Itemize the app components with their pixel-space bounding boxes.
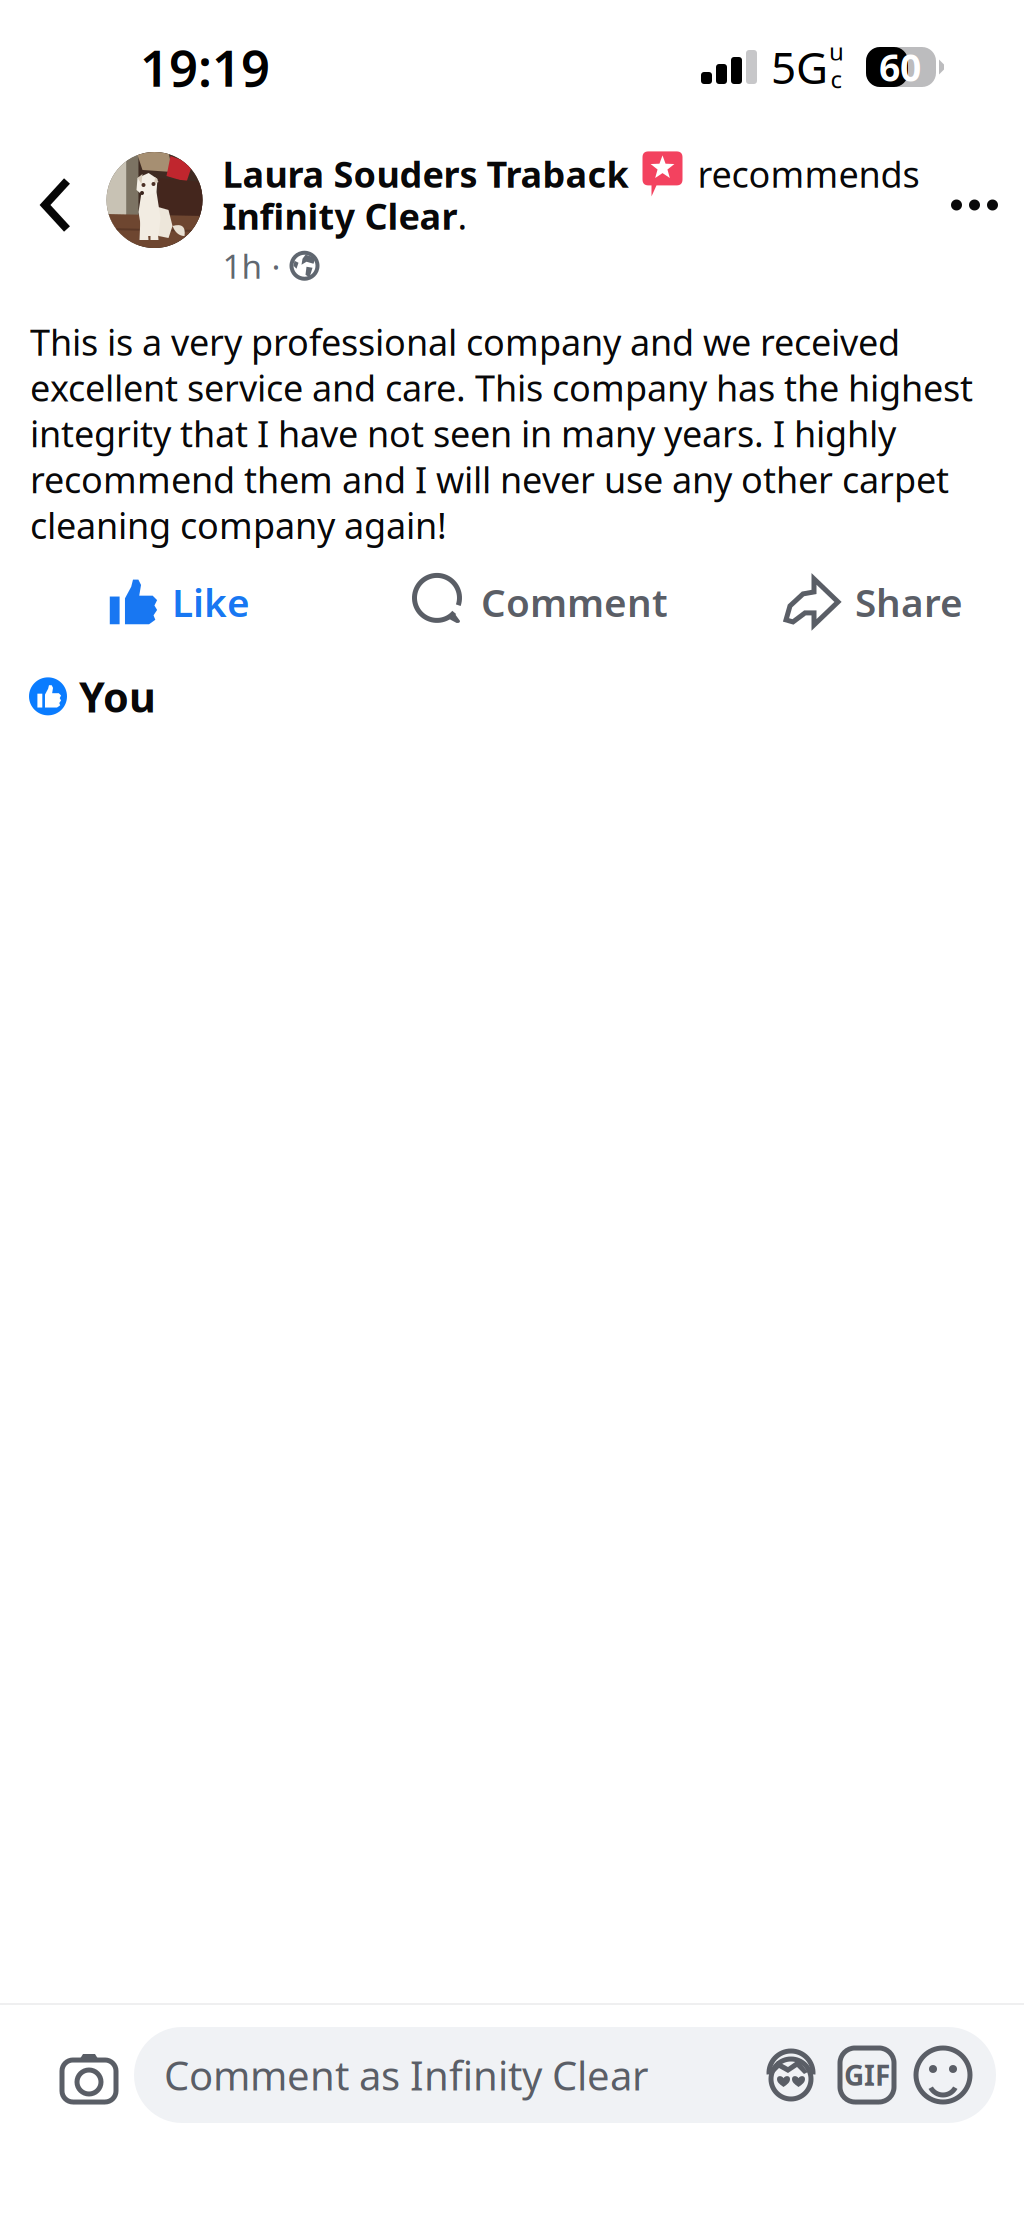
staticText: GIF [844, 2056, 890, 2094]
staticText: 1h [222, 244, 262, 288]
staticText: Comment as Infinity Clear [164, 2048, 649, 2101]
staticText: Share [855, 576, 963, 627]
button[interactable]: Like [100, 563, 258, 641]
staticText: c [830, 63, 842, 95]
staticText: recommends [697, 150, 919, 198]
staticText: You [79, 669, 156, 724]
staticText: 5G [771, 38, 828, 96]
button[interactable]: More options [919, 134, 1024, 276]
staticText: Like [172, 576, 250, 627]
button[interactable]: Camera [44, 2027, 134, 2123]
button[interactable]: GIF [818, 2048, 894, 2102]
staticText: 60 [879, 42, 921, 92]
staticText: . [457, 192, 467, 240]
staticText: Infinity Clear [222, 192, 457, 240]
button[interactable]: Avatar sticker [764, 2048, 818, 2102]
staticText: · [271, 244, 280, 288]
button[interactable]: Comment [403, 563, 676, 641]
button[interactable]: Emoji [894, 2048, 970, 2102]
staticText: Laura Souders Traback [222, 150, 628, 198]
staticText: This is a very professional company and … [30, 318, 973, 549]
staticText: u [829, 35, 844, 67]
staticText: 19:19 [140, 33, 270, 101]
button[interactable]: Share [773, 563, 971, 641]
button[interactable]: Back [0, 134, 95, 276]
staticText: Comment [481, 576, 668, 627]
